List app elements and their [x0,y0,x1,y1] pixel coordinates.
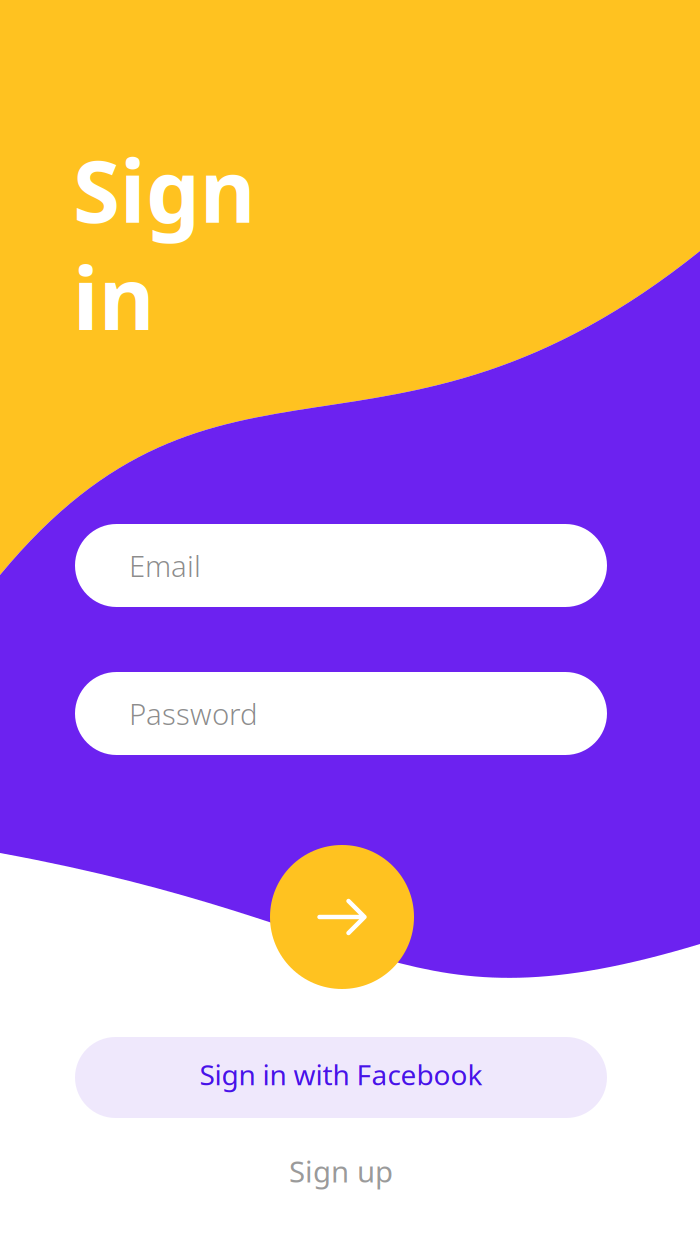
button[interactable]: Sign in with Facebook [75,1037,607,1118]
button[interactable]: Password [75,672,607,755]
staticText: Sign [73,133,255,246]
staticText: Password [129,694,258,733]
button[interactable]: Continue [270,845,414,989]
button[interactable]: Email [75,524,607,607]
staticText: Sign up [289,1151,393,1190]
staticText: Sign in with Facebook [199,1056,482,1093]
button[interactable]: Sign up [75,1118,606,1224]
staticText: Email [129,546,201,585]
staticText: in [73,240,154,354]
